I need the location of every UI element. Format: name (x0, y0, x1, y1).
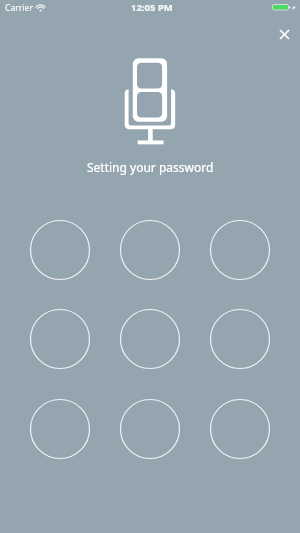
button[interactable]: Pattern dot 9 (209, 398, 271, 460)
button[interactable]: Pattern dot 5 (119, 308, 181, 370)
button[interactable]: Close (270, 20, 298, 48)
staticText: Carrier (5, 2, 33, 14)
button[interactable]: Pattern dot 1 (29, 219, 91, 281)
button[interactable]: Pattern dot 7 (29, 398, 91, 460)
button[interactable]: Pattern dot 8 (119, 398, 181, 460)
button[interactable]: Pattern dot 4 (29, 308, 91, 370)
staticText: 12:05 PM (131, 1, 173, 14)
staticText: Setting your password (87, 159, 214, 175)
button[interactable]: Pattern dot 3 (209, 219, 271, 281)
button[interactable]: Pattern dot 2 (119, 219, 181, 281)
button[interactable]: Pattern dot 6 (209, 308, 271, 370)
